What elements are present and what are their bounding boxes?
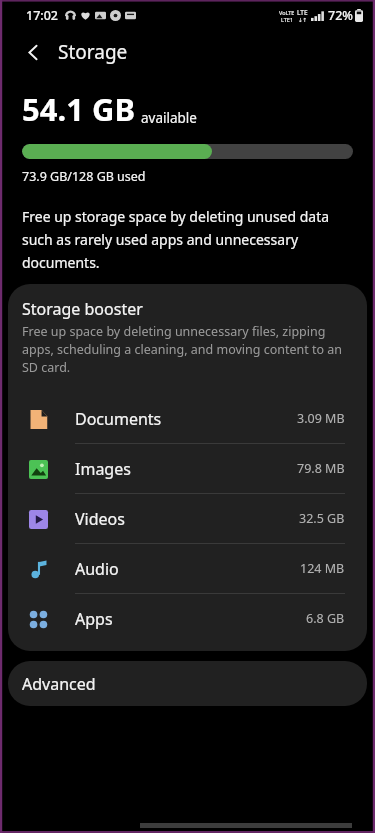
staticText: 72% — [328, 7, 353, 24]
staticText: Advanced — [22, 673, 96, 695]
button[interactable]: Advanced — [8, 661, 367, 706]
staticText: Storage — [58, 39, 128, 65]
button[interactable]: Apps — [8, 594, 367, 643]
button[interactable]: Audio — [8, 544, 367, 594]
button[interactable]: Videos — [8, 494, 367, 544]
staticText: 73.9 GB/128 GB used — [22, 168, 146, 185]
staticText: 124 MB — [300, 560, 345, 577]
staticText: LTE — [297, 8, 308, 17]
staticText: Free up storage space by deleting unused… — [22, 207, 353, 272]
staticText: Audio — [75, 558, 300, 580]
staticText: Videos — [75, 508, 299, 530]
staticText: Storage booster — [22, 298, 143, 320]
staticText: Images — [75, 458, 297, 480]
staticText: 3.09 MB — [297, 410, 345, 427]
staticText: available — [141, 109, 197, 127]
staticText: 32.5 GB — [299, 510, 345, 527]
button[interactable]: Back — [14, 33, 52, 71]
staticText: Apps — [75, 608, 306, 630]
staticText: LTE1 — [281, 16, 294, 23]
staticText: 79.8 MB — [297, 460, 345, 477]
staticText: VoLTE — [279, 9, 295, 16]
staticText: ↓↑ — [298, 17, 308, 23]
button[interactable]: Documents — [8, 394, 367, 444]
staticText: 6.8 GB — [306, 610, 345, 627]
button[interactable]: Images — [8, 444, 367, 494]
button[interactable]: Storage booster — [8, 284, 367, 388]
staticText: Free up space by deleting unnecessary fi… — [22, 323, 345, 376]
staticText: 17:02 — [26, 7, 59, 24]
staticText: Documents — [75, 408, 297, 430]
staticText: 54.1 GB — [22, 88, 136, 130]
